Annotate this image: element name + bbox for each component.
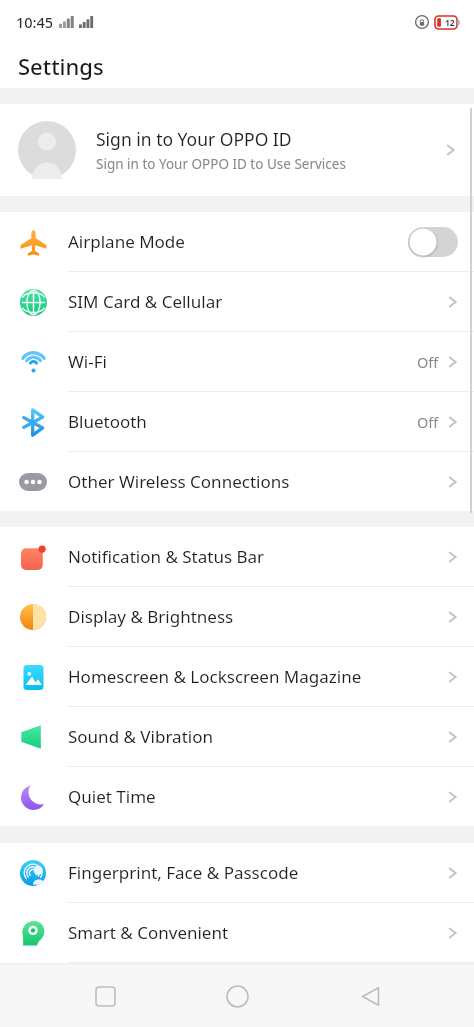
button[interactable]: Other Wireless Connections [0, 452, 474, 511]
staticText: Fingerprint, Face & Passcode [68, 861, 447, 884]
button[interactable]: Sign in to Your OPPO ID [0, 104, 474, 196]
staticText: Homescreen & Lockscreen Magazine [68, 665, 447, 688]
staticText: Smart & Convenient [68, 921, 447, 944]
button[interactable]: Airplane Mode [0, 212, 474, 272]
button[interactable]: Recent apps [77, 968, 133, 1024]
button[interactable]: Home [209, 968, 265, 1024]
button[interactable]: Homescreen & Lockscreen Magazine [0, 647, 474, 707]
staticText: Display & Brightness [68, 605, 447, 628]
staticText: Notification & Status Bar [68, 545, 447, 568]
button[interactable]: Back [342, 968, 398, 1024]
button[interactable]: Fingerprint, Face & Passcode [0, 843, 474, 903]
staticText: Settings [18, 51, 104, 81]
staticText: 12 [445, 17, 455, 29]
staticText: 10:45 [16, 12, 54, 32]
staticText: Sign in to Your OPPO ID to Use Services [96, 155, 346, 173]
staticText: Sign in to Your OPPO ID [96, 127, 292, 151]
button[interactable]: Bluetooth [0, 392, 474, 452]
staticText: Off [417, 412, 439, 432]
button[interactable]: Quiet Time [0, 767, 474, 826]
staticText: Quiet Time [68, 785, 447, 808]
button[interactable]: Display & Brightness [0, 587, 474, 647]
button[interactable]: Airplane Mode toggle [408, 227, 458, 257]
button[interactable]: Smart & Convenient [0, 903, 474, 963]
staticText: Off [417, 352, 439, 372]
button[interactable]: Sound & Vibration [0, 707, 474, 767]
staticText: Sound & Vibration [68, 725, 447, 748]
staticText: SIM Card & Cellular [68, 290, 447, 313]
button[interactable]: SIM Card & Cellular [0, 272, 474, 332]
button[interactable]: Notification & Status Bar [0, 527, 474, 587]
staticText: Airplane Mode [68, 230, 408, 253]
button[interactable]: Wi-Fi [0, 332, 474, 392]
staticText: Wi-Fi [68, 350, 417, 373]
staticText: Bluetooth [68, 410, 417, 433]
staticText: Other Wireless Connections [68, 470, 447, 493]
